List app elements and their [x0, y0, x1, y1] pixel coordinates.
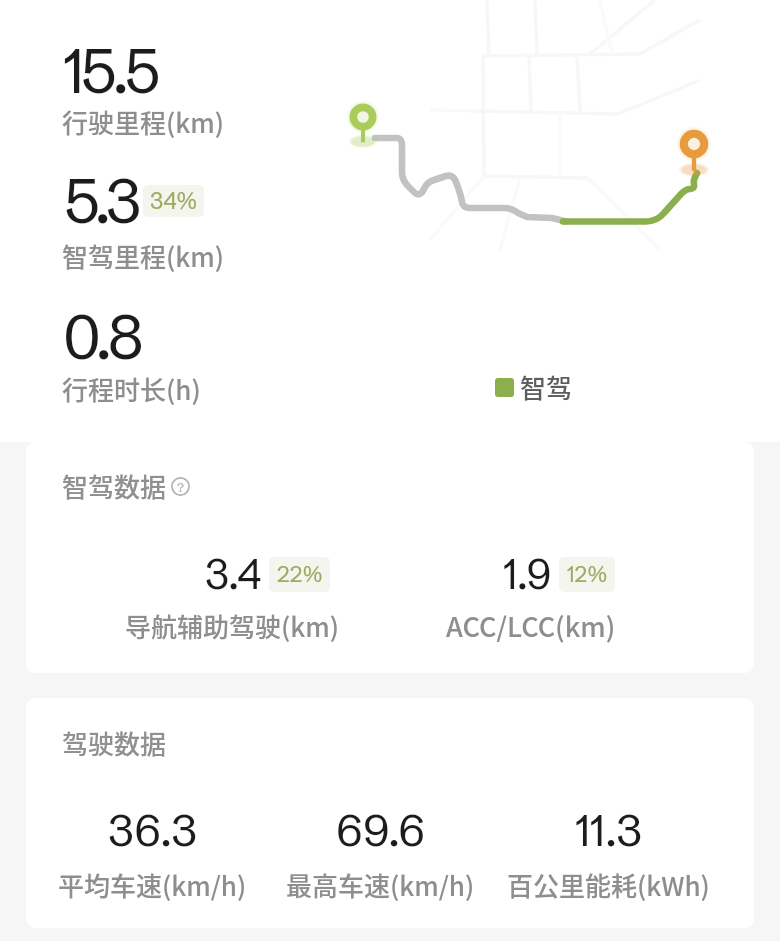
staticText: ?: [177, 479, 184, 495]
staticText: 11.3: [575, 802, 642, 858]
staticText: 3.4: [205, 548, 261, 600]
staticText: 平均车速(km/h): [58, 866, 247, 902]
staticText: 行驶里程(km): [62, 103, 224, 141]
staticText: 百公里能耗(kWh): [507, 866, 710, 902]
staticText: 智驾数据: [62, 467, 167, 505]
staticText: 0.8: [63, 298, 140, 375]
staticText: 智驾里程(km): [62, 237, 224, 275]
staticText: 5.3: [64, 162, 137, 239]
staticText: 69.6: [336, 802, 425, 858]
button[interactable]: 智驾: [495, 368, 573, 406]
staticText: 34%: [150, 187, 197, 215]
staticText: 驾驶数据: [62, 724, 167, 762]
button[interactable]: 11.3: [478, 802, 738, 902]
staticText: 导航辅助驾驶(km): [125, 607, 339, 645]
staticText: 15.5: [63, 32, 157, 109]
other: Help: [171, 477, 190, 496]
button[interactable]: 36.3: [26, 802, 282, 902]
staticText: ACC/LCC(km): [446, 606, 616, 645]
button[interactable]: 智驾数据: [62, 467, 190, 505]
staticText: 36.3: [108, 802, 197, 858]
staticText: 22%: [277, 561, 322, 588]
staticText: 1.9: [503, 548, 551, 600]
staticText: 12%: [567, 561, 607, 588]
staticText: 智驾: [520, 368, 573, 406]
button[interactable]: 69.6: [250, 802, 510, 902]
staticText: 最高车速(km/h): [286, 866, 475, 902]
staticText: 行程时长(h): [62, 370, 201, 408]
